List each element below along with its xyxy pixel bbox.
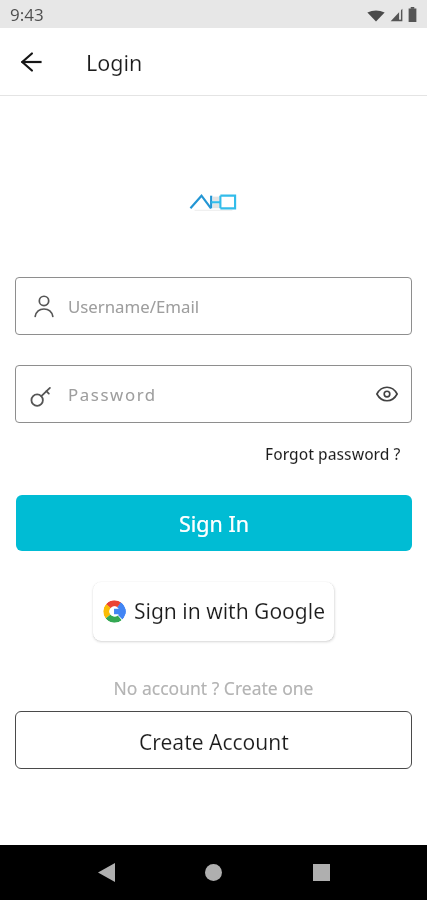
staticText: 9:43 — [10, 3, 44, 26]
button[interactable]: Forgot password ? — [261, 439, 405, 468]
button[interactable]: Username/Email — [15, 277, 412, 335]
button[interactable]: Create Account — [15, 711, 412, 769]
button[interactable]: Sign in with Google — [93, 582, 334, 641]
button[interactable]: Recents — [298, 845, 344, 900]
staticText: No account ? Create one — [0, 676, 427, 700]
staticText: Sign in with Google — [134, 597, 325, 626]
button[interactable]: Back — [83, 845, 129, 900]
staticText: Username/Email — [68, 295, 200, 318]
button[interactable]: Password — [15, 365, 412, 423]
staticText: Create Account — [139, 728, 289, 757]
button[interactable]: Sign In — [16, 495, 412, 551]
staticText: Password — [68, 383, 157, 406]
staticText: Login — [86, 48, 143, 77]
staticText: Forgot password ? — [265, 443, 401, 464]
button[interactable]: Home — [190, 845, 236, 900]
button[interactable]: Back — [7, 38, 55, 86]
staticText: Sign In — [179, 509, 250, 538]
button[interactable]: Show password — [370, 377, 404, 411]
